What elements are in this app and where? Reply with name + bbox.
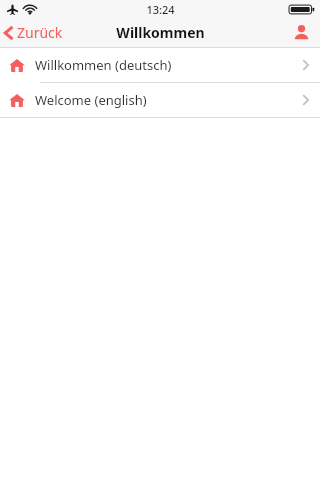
button[interactable]: Welcome (english) (0, 83, 320, 117)
staticText: Willkommen (116, 23, 205, 42)
staticText: Welcome (english) (35, 91, 147, 109)
staticText: 13:24 (146, 2, 175, 17)
button[interactable]: Willkommen (deutsch) (0, 48, 320, 82)
staticText: Zurück (17, 23, 63, 42)
button[interactable]: Zurück (0, 19, 71, 46)
staticText: Willkommen (deutsch) (35, 56, 172, 74)
button[interactable]: Account (283, 20, 320, 45)
